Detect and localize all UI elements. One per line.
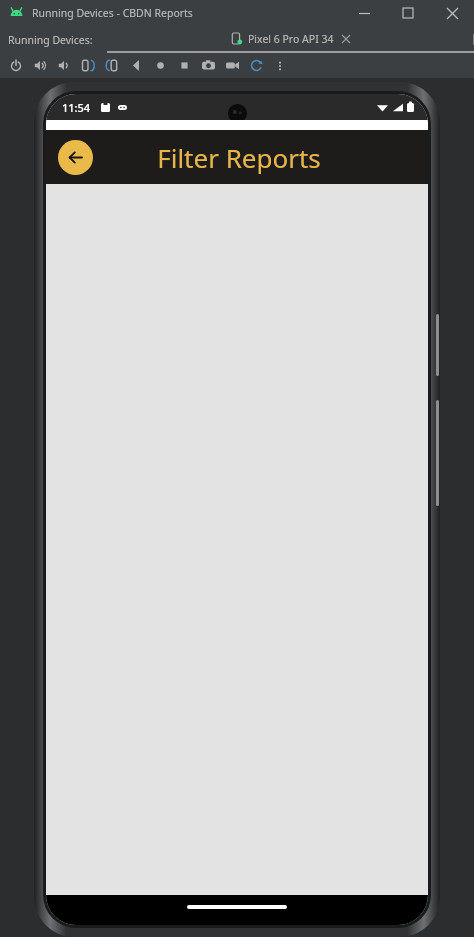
- button[interactable]: Volume down: [52, 53, 76, 78]
- staticText: Running Devices:: [8, 33, 93, 47]
- button[interactable]: Overview: [172, 53, 196, 78]
- button[interactable]: Record screen: [220, 53, 244, 78]
- staticText: Running Devices - CBDN Reports: [32, 6, 193, 20]
- button[interactable]: Pixel 6 Pro API 34: [107, 26, 474, 53]
- staticText: Filter Reports: [157, 140, 321, 175]
- button[interactable]: Power: [4, 53, 28, 78]
- button[interactable]: Restore: [244, 53, 268, 78]
- button[interactable]: Volume up: [28, 53, 52, 78]
- button[interactable]: Back: [58, 140, 93, 175]
- staticText: 11:54: [62, 100, 91, 115]
- button[interactable]: Minimize: [342, 0, 386, 26]
- button[interactable]: Rotate right: [100, 53, 124, 78]
- button[interactable]: Screenshot: [196, 53, 220, 78]
- button[interactable]: Close: [430, 0, 474, 26]
- staticText: Pixel 6 Pro API 34: [248, 32, 334, 46]
- button[interactable]: Maximize: [386, 0, 430, 26]
- button[interactable]: Home: [148, 53, 172, 78]
- button[interactable]: Back: [124, 53, 148, 78]
- button[interactable]: Rotate left: [76, 53, 100, 78]
- button[interactable]: More: [268, 53, 292, 78]
